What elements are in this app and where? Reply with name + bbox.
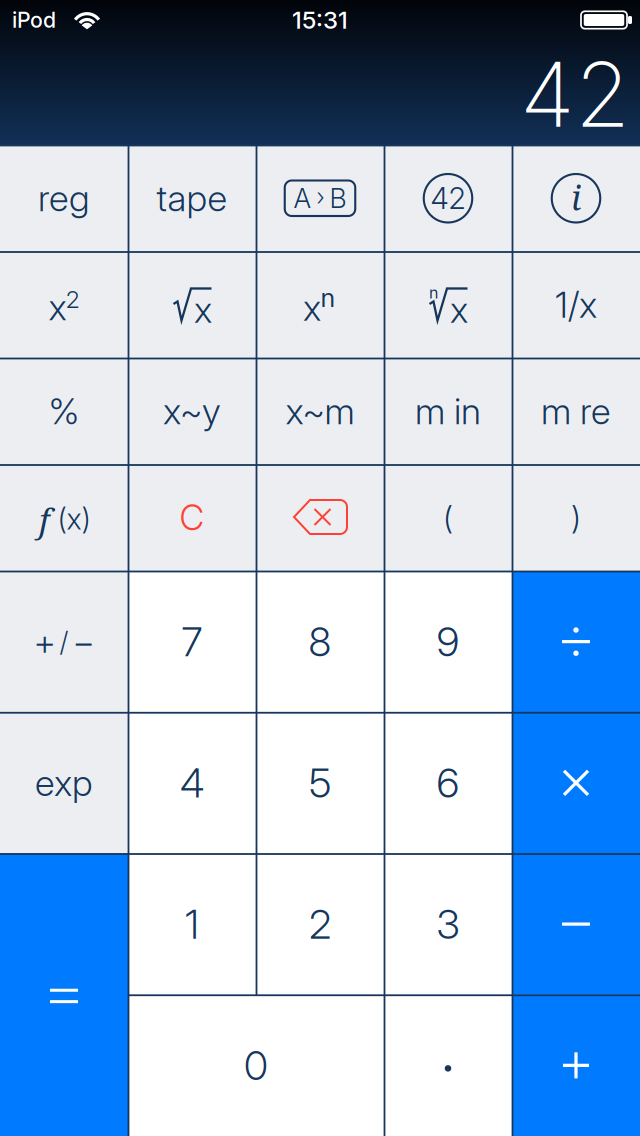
staticText: n	[320, 283, 335, 313]
staticText: 15:31	[292, 6, 348, 34]
staticText: 2	[309, 900, 331, 948]
button[interactable]: (	[384, 464, 512, 571]
staticText: 3	[436, 900, 459, 948]
button[interactable]: f	[0, 464, 128, 571]
button[interactable]: )	[512, 464, 640, 571]
button[interactable]: x	[128, 251, 256, 358]
button[interactable]: x~y	[128, 358, 256, 464]
staticText: x	[194, 288, 212, 331]
staticText: 9	[436, 618, 459, 665]
button[interactable]: 3	[384, 853, 512, 995]
button[interactable]: reg	[0, 145, 128, 251]
staticText: −	[72, 620, 94, 663]
staticText: tape	[156, 177, 227, 219]
staticText: 7	[181, 618, 202, 665]
staticText: m in	[415, 390, 481, 432]
staticText: i	[571, 174, 581, 220]
staticText: x	[450, 288, 468, 331]
button[interactable]: 5	[256, 712, 384, 853]
staticText: m re	[541, 390, 611, 432]
button[interactable]: A	[256, 145, 384, 251]
button[interactable]	[512, 995, 640, 1136]
staticText: 0	[244, 1042, 268, 1089]
staticText: x	[48, 286, 66, 328]
staticText: %	[48, 390, 79, 432]
button[interactable]: C	[128, 464, 256, 571]
staticText: )	[571, 499, 581, 537]
button[interactable]: x~m	[256, 358, 384, 464]
staticText: 1	[185, 900, 199, 948]
staticText: x~m	[285, 390, 354, 432]
button[interactable]	[256, 464, 384, 571]
staticText: 8	[308, 618, 331, 665]
button[interactable]: 9	[384, 571, 512, 712]
button[interactable]	[0, 853, 128, 1136]
button[interactable]: 6	[384, 712, 512, 853]
staticText: x~y	[163, 390, 221, 432]
button[interactable]: 0	[128, 995, 384, 1136]
button[interactable]: x	[0, 251, 128, 358]
button[interactable]: %	[0, 358, 128, 464]
button[interactable]: 1	[128, 853, 256, 995]
button[interactable]	[512, 571, 640, 712]
button[interactable]	[384, 995, 512, 1136]
button[interactable]: +	[0, 571, 128, 712]
staticText: B	[329, 182, 346, 214]
staticText: exp	[35, 762, 93, 804]
button[interactable]	[512, 853, 640, 995]
staticText: 42	[430, 181, 465, 215]
staticText: (x)	[57, 501, 90, 536]
staticText: C	[179, 497, 204, 538]
staticText: 2	[65, 285, 79, 313]
staticText: ›	[316, 184, 324, 211]
button[interactable]: 42	[384, 145, 512, 251]
button[interactable]: x	[384, 251, 512, 358]
button[interactable]: 7	[128, 571, 256, 712]
staticText: +	[33, 620, 55, 663]
staticText: 4	[180, 759, 204, 806]
staticText: iPod	[12, 7, 56, 33]
staticText: f	[39, 497, 49, 542]
button[interactable]	[512, 712, 640, 853]
staticText: A	[293, 182, 311, 214]
button[interactable]: 2	[256, 853, 384, 995]
staticText: (	[443, 499, 453, 537]
staticText: 6	[436, 759, 459, 806]
button[interactable]: 1/x	[512, 251, 640, 358]
staticText: 1/x	[555, 283, 597, 326]
staticText: /	[59, 626, 68, 658]
button[interactable]: 4	[128, 712, 256, 853]
button[interactable]: x	[256, 251, 384, 358]
button[interactable]: i	[512, 145, 640, 251]
staticText: reg	[38, 177, 90, 219]
button[interactable]: m re	[512, 358, 640, 464]
staticText: 42	[520, 42, 630, 147]
staticText: n	[429, 283, 438, 302]
button[interactable]: tape	[128, 145, 256, 251]
button[interactable]: m in	[384, 358, 512, 464]
staticText: x	[303, 286, 321, 329]
staticText: 5	[309, 759, 331, 806]
button[interactable]: 8	[256, 571, 384, 712]
button[interactable]: exp	[0, 712, 128, 853]
